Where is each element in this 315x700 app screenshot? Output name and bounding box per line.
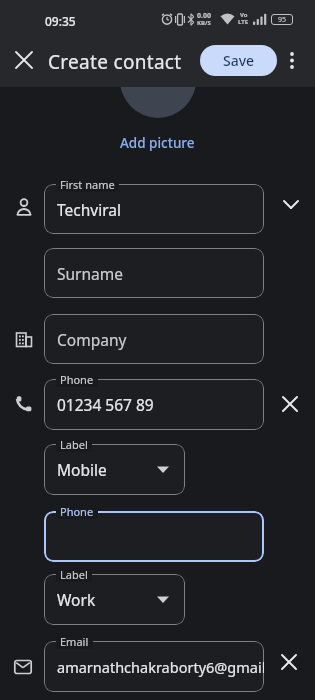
button[interactable] — [44, 379, 264, 430]
staticText: 0.00 — [197, 11, 211, 21]
button[interactable] — [44, 641, 264, 692]
button[interactable] — [4, 40, 44, 80]
button[interactable] — [44, 511, 264, 562]
staticText: Company — [57, 329, 127, 350]
staticText: First name — [60, 177, 115, 192]
staticText: Mobile — [57, 459, 107, 480]
button[interactable] — [44, 574, 185, 625]
button[interactable] — [44, 248, 264, 298]
staticText: amarnathchakraborty6@gmail — [57, 657, 264, 677]
button[interactable]: Add picture — [116, 130, 199, 156]
button[interactable] — [269, 642, 309, 682]
staticText: Add picture — [120, 134, 195, 152]
staticText: Work — [57, 589, 96, 610]
staticText: LTE — [238, 18, 249, 26]
staticText: 95 — [278, 15, 287, 25]
button[interactable] — [270, 384, 310, 424]
button[interactable] — [44, 444, 185, 495]
staticText: Surname — [57, 263, 123, 284]
staticText: Vo — [240, 11, 248, 19]
staticText: Phone — [60, 372, 94, 387]
button[interactable] — [271, 185, 311, 225]
staticText: Save — [223, 51, 255, 70]
button[interactable] — [278, 46, 306, 74]
staticText: KB/S — [197, 19, 211, 27]
staticText: 01234 567 89 — [57, 394, 154, 415]
staticText: Email — [60, 634, 89, 649]
staticText: Create contact — [48, 49, 182, 75]
staticText: Phone — [60, 504, 94, 519]
button[interactable] — [44, 184, 264, 234]
staticText: Label — [60, 437, 88, 452]
staticText: Label — [60, 567, 88, 582]
button[interactable] — [44, 314, 264, 364]
staticText: 09:35 — [45, 13, 76, 29]
button[interactable]: Save — [200, 45, 277, 76]
staticText: Techviral — [57, 199, 121, 220]
